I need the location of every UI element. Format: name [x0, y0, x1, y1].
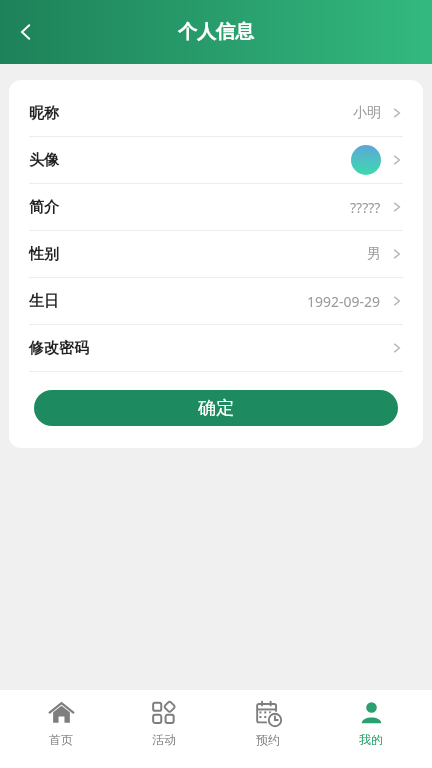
staticText: 个人信息: [178, 20, 254, 44]
staticText: 修改密码: [29, 339, 89, 358]
staticText: 头像: [29, 151, 59, 170]
staticText: 生日: [29, 292, 59, 311]
staticText: 性别: [29, 245, 59, 264]
button[interactable]: 预约: [225, 698, 311, 749]
staticText: 活动: [152, 732, 176, 747]
staticText: 男: [367, 245, 381, 263]
staticText: ?????: [350, 198, 381, 217]
button[interactable]: 生日: [9, 278, 423, 324]
button[interactable]: 我的: [328, 698, 414, 749]
staticText: 昵称: [29, 104, 59, 123]
staticText: 简介: [29, 198, 59, 217]
staticText: 1992-09-29: [307, 292, 381, 311]
button[interactable]: 性别: [9, 231, 423, 277]
staticText: 我的: [359, 732, 383, 747]
button[interactable]: 简介: [9, 184, 423, 230]
button[interactable]: 活动: [121, 698, 207, 749]
button[interactable]: 头像: [9, 137, 423, 183]
button[interactable]: 昵称: [9, 90, 423, 136]
button[interactable]: 首页: [18, 698, 104, 749]
staticText: 确定: [198, 397, 234, 420]
staticText: 小明: [353, 104, 381, 122]
staticText: 首页: [49, 732, 73, 747]
button[interactable]: 修改密码: [9, 325, 423, 371]
staticText: 预约: [256, 732, 280, 747]
button[interactable]: Back: [6, 12, 46, 52]
button[interactable]: 确定: [34, 390, 398, 426]
